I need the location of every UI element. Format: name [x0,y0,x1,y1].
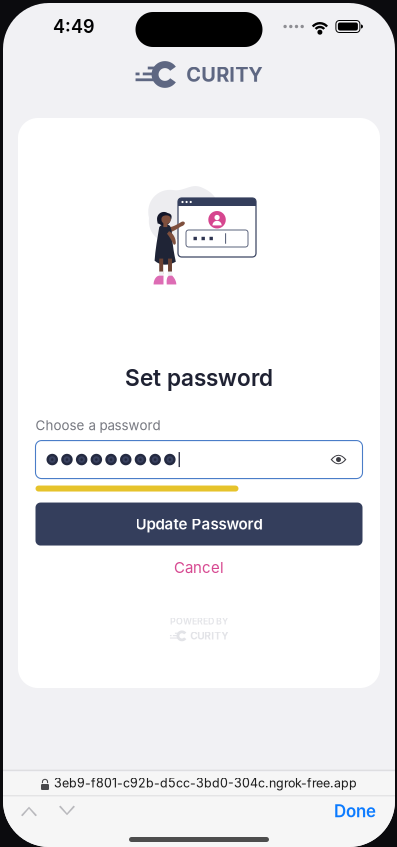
staticText: O [176,616,183,627]
staticText: B [216,616,222,627]
staticText: R [204,630,211,642]
button[interactable]: Previous field [10,796,48,826]
staticText: I [229,62,235,87]
button[interactable]: Show password [325,447,351,473]
staticText: Choose a password [35,417,160,433]
staticText: Set password [125,364,273,391]
staticText: 3eb9-f801-c92b-d5cc-3bd0-304c.ngrok-free… [54,775,357,790]
button[interactable]: Next field [48,796,86,826]
staticText: U [197,630,204,642]
button[interactable]: Cancel [35,558,362,578]
staticText: P [170,616,176,627]
button[interactable]: Update Password [35,503,362,546]
staticText: E [203,616,208,627]
staticText: Update Password [135,515,262,533]
staticText: T [214,630,221,642]
staticText: C [190,630,197,642]
staticText: D [208,616,214,627]
staticText: Y [248,62,263,87]
staticText: 4:49 [53,16,95,37]
staticText: T [235,62,248,87]
staticText: Y [222,616,228,627]
staticText: C [186,62,201,87]
staticText: Cancel [174,558,224,577]
staticText: U [201,62,216,87]
staticText: I [211,630,214,642]
staticText: E [192,616,197,627]
staticText: Done [334,801,376,821]
button[interactable]: Done [319,796,391,826]
staticText: W [183,616,192,627]
staticText: R [216,62,229,87]
staticText: R [197,616,203,627]
staticText: Y [221,630,228,642]
